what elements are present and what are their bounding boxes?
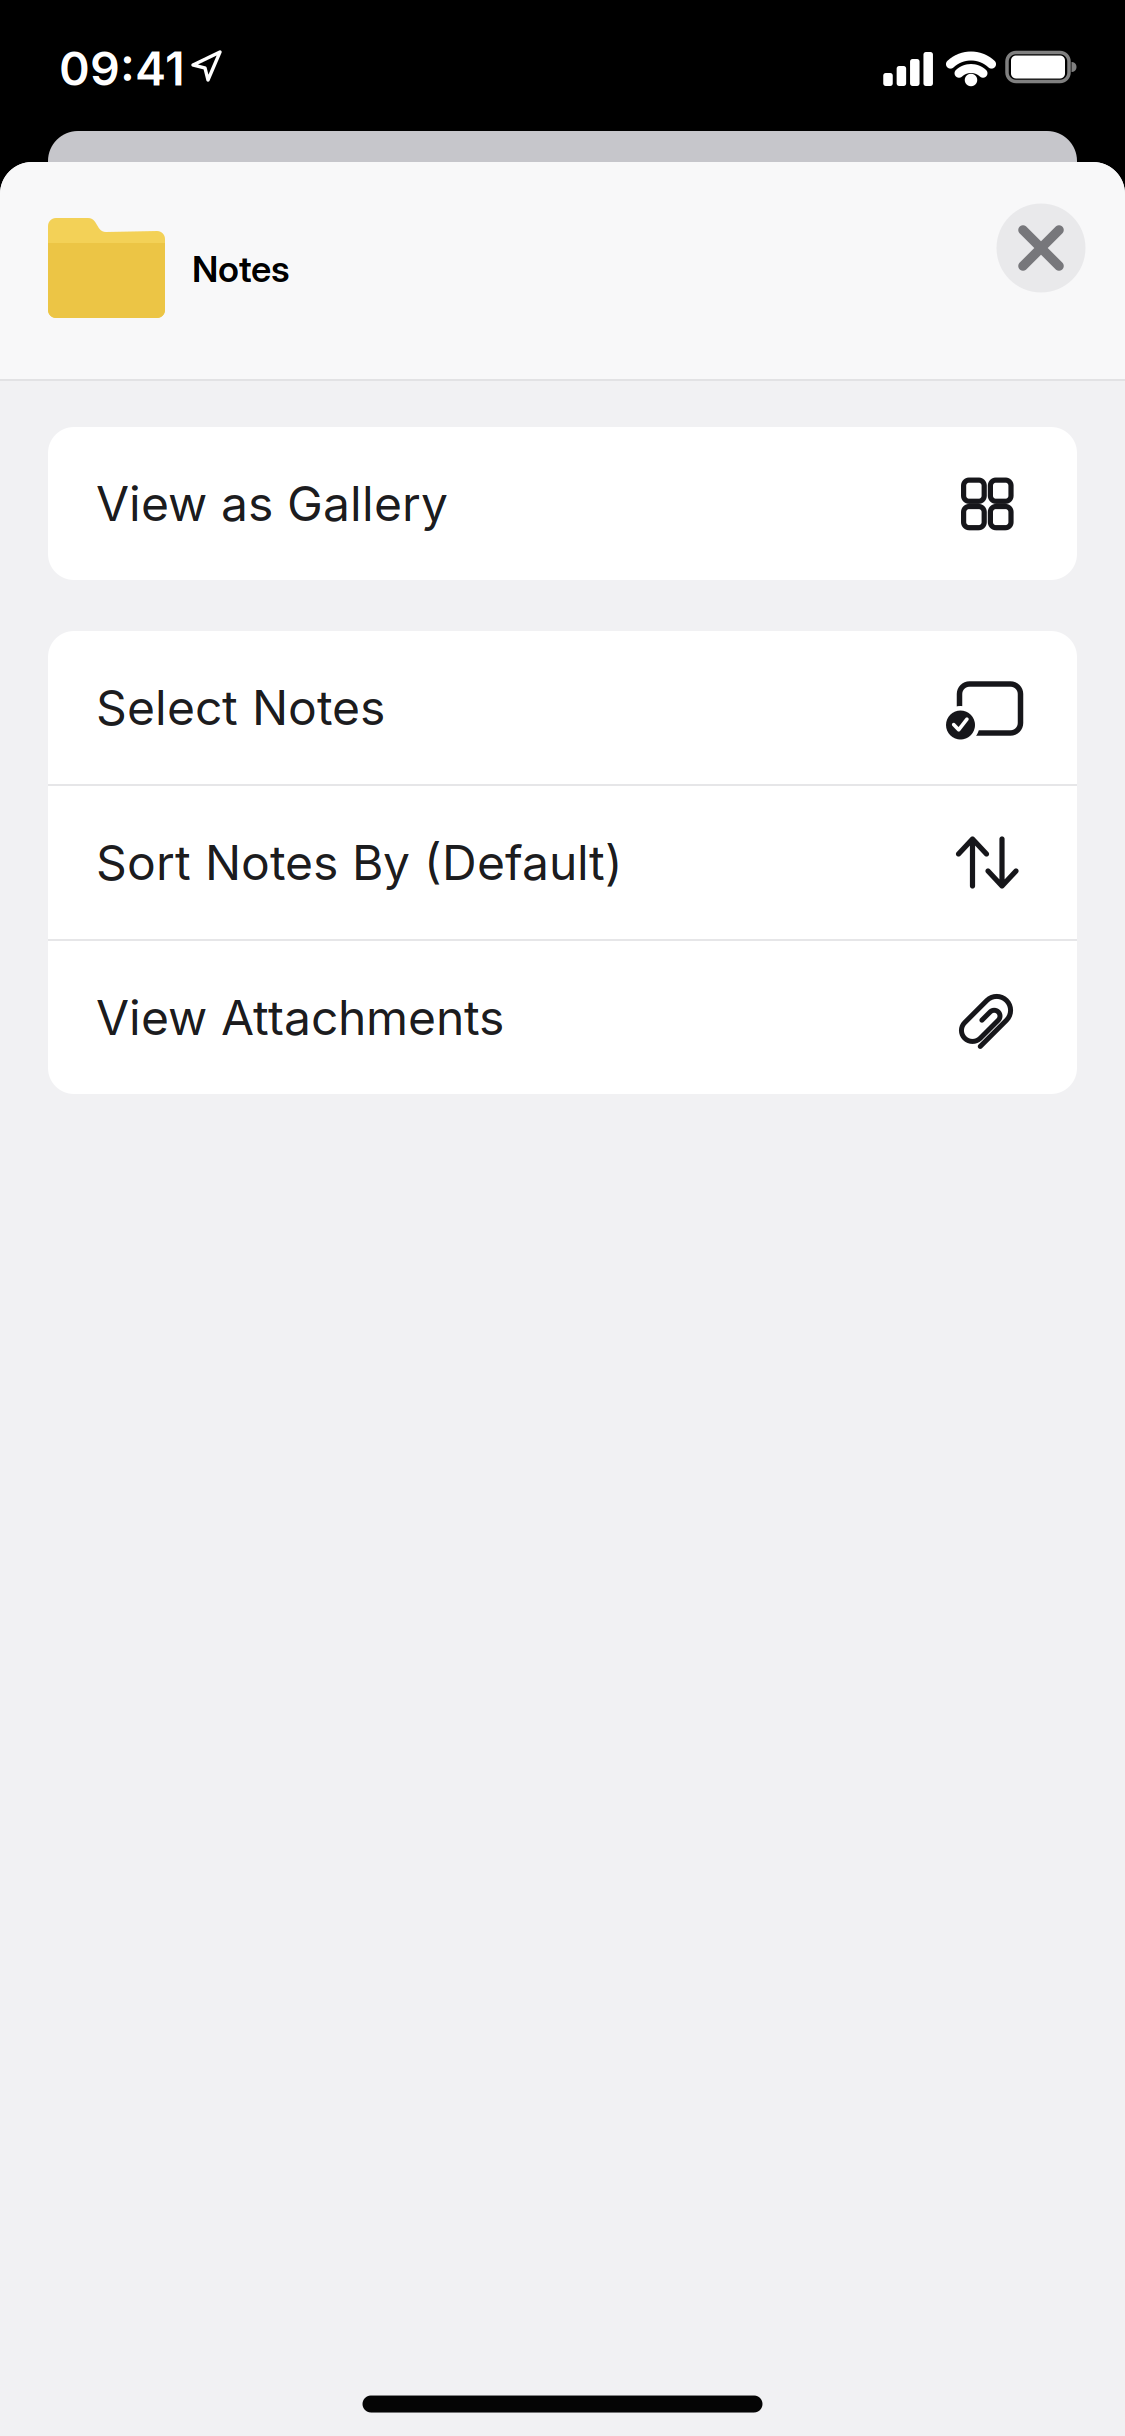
staticText: 09:41: [59, 41, 185, 96]
button[interactable]: Sort Notes By (Default): [48, 786, 1077, 939]
staticText: Select Notes: [96, 679, 385, 736]
button[interactable]: View as Gallery: [48, 427, 1077, 580]
staticText: View as Gallery: [96, 475, 448, 532]
button[interactable]: View Attachments: [48, 941, 1077, 1094]
button[interactable]: Select Notes: [48, 631, 1077, 784]
staticText: View Attachments: [96, 989, 504, 1046]
staticText: Sort Notes By (Default): [96, 834, 623, 891]
button[interactable]: Close: [996, 203, 1085, 292]
staticText: Notes: [192, 248, 290, 290]
